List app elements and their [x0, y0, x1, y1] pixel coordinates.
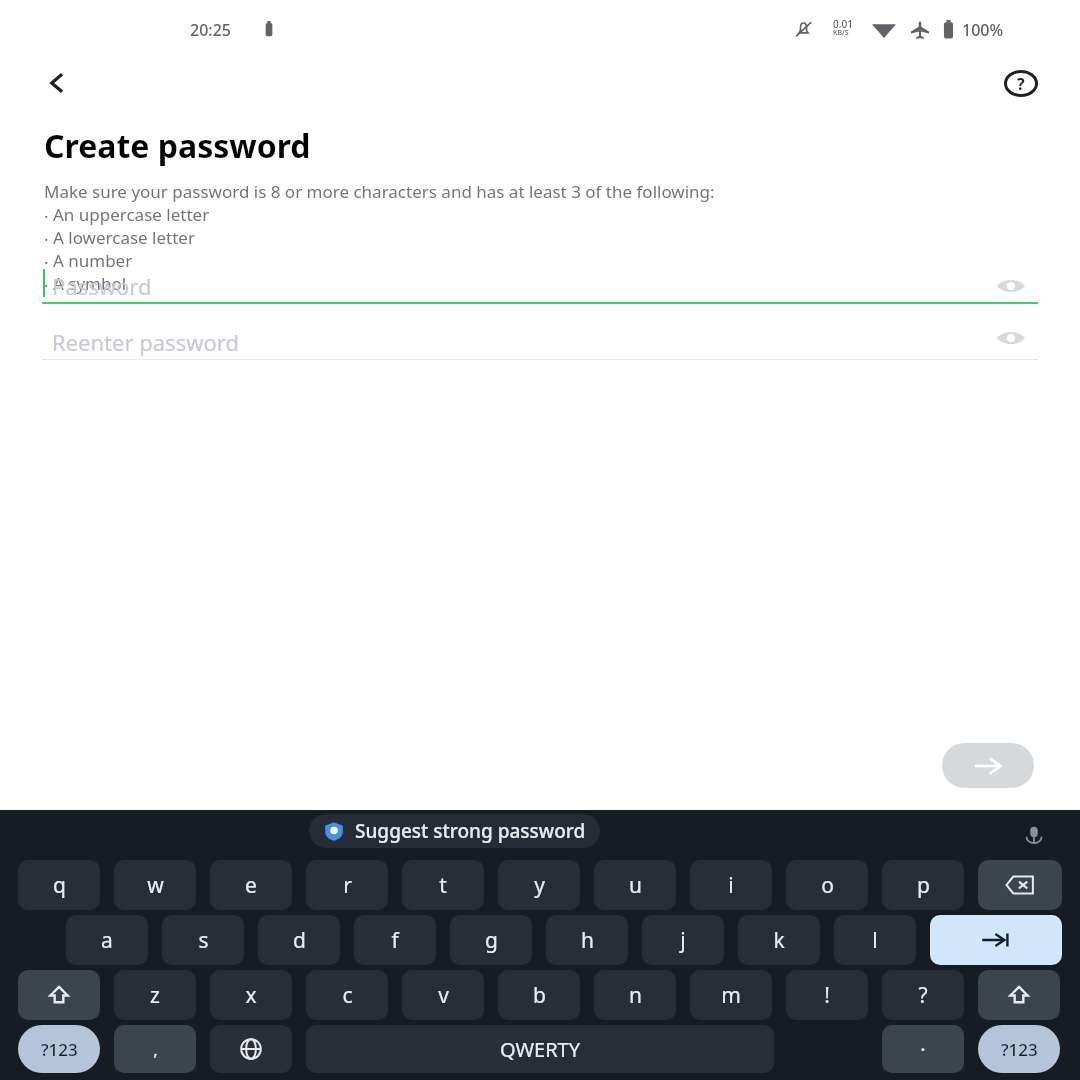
button[interactable]: j	[642, 915, 724, 965]
button[interactable]: s	[162, 915, 244, 965]
staticText: ·	[920, 1036, 926, 1063]
staticText: 100%	[962, 19, 1004, 41]
staticText: m	[721, 981, 741, 1010]
staticText: l	[872, 926, 878, 955]
button[interactable]: Show password	[988, 320, 1034, 356]
button[interactable]: ,	[114, 1025, 196, 1073]
button[interactable]: v	[402, 970, 484, 1020]
staticText: g	[485, 926, 498, 955]
button[interactable]: Show password	[988, 268, 1034, 304]
button[interactable]: p	[882, 860, 964, 910]
staticText: o	[821, 871, 834, 900]
staticText: Make sure your password is 8 or more cha…	[44, 180, 715, 203]
button[interactable]: w	[114, 860, 196, 910]
button[interactable]: ·	[882, 1025, 964, 1073]
button[interactable]: b	[498, 970, 580, 1020]
staticText: ,	[153, 1038, 158, 1061]
button[interactable]: r	[306, 860, 388, 910]
staticText: ‧ An uppercase letter	[44, 203, 210, 226]
staticText: ‧ A symbol	[44, 272, 127, 295]
staticText: w	[147, 871, 164, 900]
staticText: d	[293, 926, 306, 955]
button[interactable]: x	[210, 970, 292, 1020]
button[interactable]: g	[450, 915, 532, 965]
staticText: j	[680, 926, 686, 955]
button[interactable]: Change language	[210, 1025, 292, 1073]
button[interactable]: o	[786, 860, 868, 910]
button[interactable]: u	[594, 860, 676, 910]
staticText: e	[245, 871, 257, 900]
button[interactable]: c	[306, 970, 388, 1020]
button[interactable]: t	[402, 860, 484, 910]
button[interactable]: Password	[42, 262, 1038, 304]
staticText: s	[198, 926, 209, 955]
staticText: r	[343, 871, 352, 900]
button[interactable]: Backspace	[978, 860, 1062, 910]
staticText: n	[629, 981, 642, 1010]
staticText: Suggest strong password	[355, 818, 586, 844]
staticText: t	[439, 871, 447, 900]
button[interactable]: QWERTY	[306, 1025, 774, 1073]
button[interactable]: Back	[28, 58, 86, 108]
button[interactable]: ?	[882, 970, 964, 1020]
button[interactable]: Suggest strong password	[309, 814, 600, 848]
staticText: !	[824, 981, 830, 1010]
staticText: ‧ A lowercase letter	[44, 226, 195, 249]
button[interactable]: Shift	[978, 970, 1060, 1020]
staticText: KB/S	[833, 28, 849, 38]
button[interactable]: k	[738, 915, 820, 965]
button[interactable]: Shift	[18, 970, 100, 1020]
button[interactable]: m	[690, 970, 772, 1020]
button[interactable]: z	[114, 970, 196, 1020]
staticText: i	[728, 871, 734, 900]
staticText: q	[53, 871, 66, 900]
staticText: z	[150, 981, 160, 1010]
button[interactable]: f	[354, 915, 436, 965]
staticText: f	[391, 926, 399, 955]
button[interactable]: n	[594, 970, 676, 1020]
staticText: ?123	[41, 1038, 78, 1061]
staticText: u	[629, 871, 642, 900]
staticText: ?	[1017, 73, 1025, 95]
button[interactable]: y	[498, 860, 580, 910]
staticText: b	[533, 981, 546, 1010]
button[interactable]: Reenter password	[42, 318, 1038, 360]
staticText: y	[534, 871, 545, 900]
staticText: Password	[52, 271, 152, 301]
staticText: v	[438, 981, 449, 1010]
button[interactable]: !	[786, 970, 868, 1020]
button[interactable]: l	[834, 915, 916, 965]
staticText: ?123	[1001, 1038, 1038, 1061]
button[interactable]: q	[18, 860, 100, 910]
staticText: c	[342, 981, 353, 1010]
button[interactable]: Help	[992, 58, 1050, 108]
staticText: Reenter password	[52, 327, 239, 357]
button[interactable]: Voice input	[1014, 816, 1054, 856]
staticText: k	[773, 926, 785, 955]
button[interactable]: e	[210, 860, 292, 910]
button[interactable]: h	[546, 915, 628, 965]
button[interactable]: a	[66, 915, 148, 965]
button[interactable]: ?123	[18, 1025, 100, 1073]
staticText: 0.01	[833, 17, 853, 31]
staticText: h	[581, 926, 594, 955]
button[interactable]: i	[690, 860, 772, 910]
staticText: ?	[918, 981, 928, 1010]
staticText: p	[917, 871, 930, 900]
button[interactable]: d	[258, 915, 340, 965]
staticText: x	[245, 981, 257, 1010]
staticText: ‧ A number	[44, 249, 133, 272]
button[interactable]: Next	[942, 743, 1034, 788]
staticText: a	[101, 926, 113, 955]
button[interactable]: ?123	[978, 1025, 1060, 1073]
staticText: 20:25	[190, 19, 231, 41]
staticText: QWERTY	[500, 1036, 581, 1063]
button[interactable]: Tab	[930, 915, 1062, 965]
staticText: Create password	[44, 124, 311, 168]
